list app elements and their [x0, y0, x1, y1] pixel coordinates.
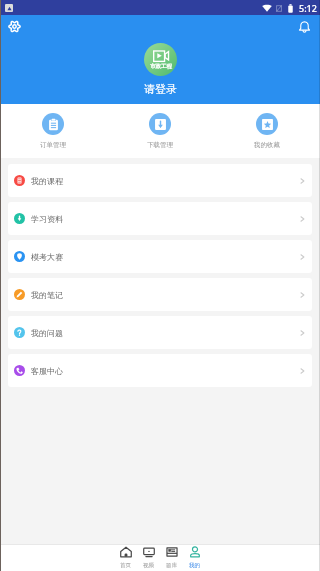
button[interactable]: 我的	[183, 545, 206, 571]
staticText: 下载管理	[147, 141, 173, 149]
button[interactable]: 我的课程	[8, 164, 312, 197]
button[interactable]: 题库	[160, 545, 183, 571]
button[interactable]: 学习资料	[8, 202, 312, 235]
staticText: 学习资料	[31, 214, 63, 224]
staticText: 我的笔记	[31, 290, 63, 300]
staticText: 5:12	[299, 2, 317, 14]
staticText: 首页	[120, 562, 131, 569]
staticText: 模考大赛	[31, 252, 63, 262]
staticText: 我的课程	[31, 176, 63, 186]
button[interactable]: 我的收藏	[213, 111, 320, 151]
button[interactable]: 首页	[114, 545, 137, 571]
staticText: 我的收藏	[254, 141, 280, 149]
staticText: 客服中心	[31, 366, 63, 376]
button[interactable]: 模考大赛	[8, 240, 312, 273]
staticText: 请登录	[144, 82, 177, 96]
button[interactable]: 订单管理	[0, 111, 106, 151]
staticText: 市政工程	[150, 63, 172, 70]
button[interactable]: 视频	[137, 545, 160, 571]
button[interactable]: 我的笔记	[8, 278, 312, 311]
button[interactable]: 我的问题	[8, 316, 312, 349]
staticText: 订单管理	[40, 141, 66, 149]
staticText: 我的问题	[31, 328, 63, 338]
button[interactable]: Settings	[5, 17, 24, 36]
button[interactable]: 下载管理	[106, 111, 213, 151]
button[interactable]: 客服中心	[8, 354, 312, 387]
staticText: 视频	[143, 562, 154, 569]
staticText: 题库	[166, 562, 177, 569]
button[interactable]: Notifications	[295, 17, 314, 36]
staticText: 我的	[189, 562, 200, 569]
